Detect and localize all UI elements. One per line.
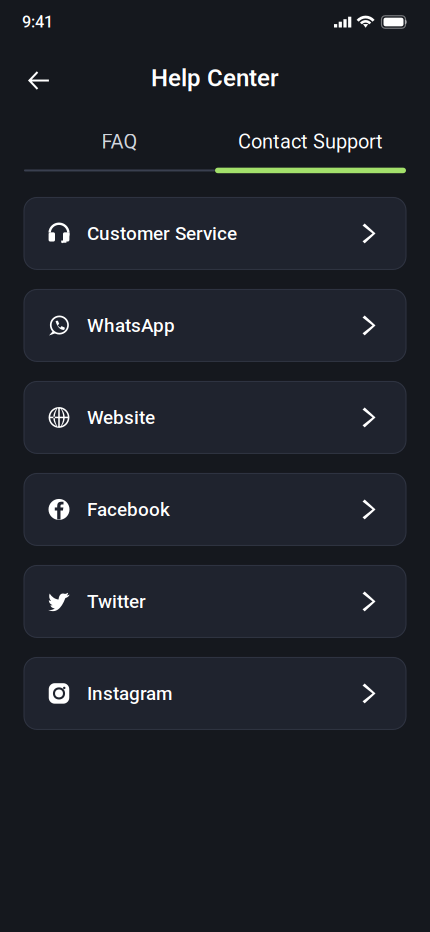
- button[interactable]: Instagram: [24, 657, 406, 729]
- staticText: Contact Support: [238, 130, 383, 153]
- button[interactable]: Facebook: [24, 473, 406, 545]
- staticText: WhatsApp: [87, 314, 175, 336]
- staticText: Facebook: [87, 498, 170, 520]
- button[interactable]: Twitter: [24, 565, 406, 637]
- button[interactable]: WhatsApp: [24, 289, 406, 361]
- button[interactable]: Website: [24, 381, 406, 453]
- staticText: Customer Service: [87, 222, 237, 244]
- staticText: Website: [87, 406, 155, 428]
- button[interactable]: Contact Support: [215, 121, 406, 162]
- staticText: FAQ: [101, 130, 137, 153]
- staticText: Instagram: [87, 682, 172, 704]
- button[interactable]: Customer Service: [24, 197, 406, 269]
- staticText: Twitter: [87, 590, 146, 612]
- staticText: Help Center: [151, 64, 279, 92]
- button[interactable]: FAQ: [24, 121, 215, 162]
- staticText: 9:41: [22, 12, 53, 32]
- button[interactable]: Back: [16, 56, 60, 100]
